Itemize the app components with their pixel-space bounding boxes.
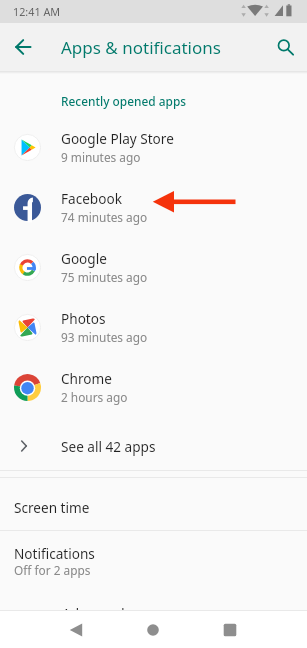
staticText: 93 minutes ago	[61, 329, 148, 345]
button[interactable]: Recent apps	[210, 611, 250, 648]
button[interactable]: Back	[0, 24, 46, 70]
staticText: See all 42 apps	[61, 437, 156, 456]
staticText: Chrome	[61, 369, 112, 388]
staticText: Apps & notifications	[61, 36, 221, 59]
staticText: 2 hours ago	[61, 389, 128, 405]
staticText: Photos	[61, 309, 106, 328]
staticText: Facebook	[61, 189, 122, 208]
staticText: 75 minutes ago	[61, 269, 148, 285]
button[interactable]: Home	[133, 611, 173, 648]
button[interactable]: Chrome	[0, 357, 307, 417]
staticText: Recently opened apps	[61, 93, 187, 109]
staticText: 9 minutes ago	[61, 149, 141, 165]
staticText: Google Play Store	[61, 129, 174, 148]
staticText: Notifications	[14, 544, 95, 563]
button[interactable]: Search	[263, 25, 307, 69]
button[interactable]: Advanced	[0, 603, 307, 610]
staticText: Screen time	[14, 498, 90, 517]
button[interactable]: Google	[0, 237, 307, 297]
button[interactable]: See all 42 apps	[0, 424, 307, 468]
button[interactable]: Screen time	[0, 498, 307, 518]
button[interactable]: Back	[56, 611, 96, 648]
staticText: 74 minutes ago	[61, 209, 148, 225]
staticText: Google	[61, 249, 107, 268]
button[interactable]: Notifications	[0, 544, 307, 584]
button[interactable]: Photos	[0, 297, 307, 357]
staticText: Advanced	[62, 604, 125, 610]
button[interactable]: Facebook	[0, 177, 307, 237]
staticText: 12:41 AM	[13, 4, 61, 19]
button[interactable]: Google Play Store	[0, 117, 307, 177]
staticText: Off for 2 apps	[14, 562, 91, 578]
